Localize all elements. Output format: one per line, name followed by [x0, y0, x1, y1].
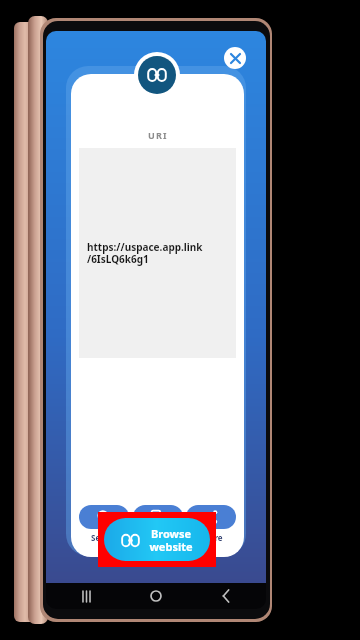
button[interactable]: Link — [138, 56, 176, 94]
button[interactable]: Search — [78, 505, 130, 543]
staticText: Search — [91, 532, 118, 543]
button[interactable]: Share — [185, 505, 237, 543]
staticText: Copy — [148, 532, 168, 543]
button[interactable]: Home — [146, 586, 166, 606]
staticText: Share — [200, 532, 223, 543]
staticText: Browse website — [149, 526, 193, 554]
button[interactable]: Browse website — [104, 518, 210, 561]
button[interactable]: Recents — [76, 586, 96, 606]
button[interactable]: Copy — [132, 505, 184, 543]
button[interactable]: Back — [216, 586, 236, 606]
staticText: URI — [148, 129, 168, 141]
staticText: https://uspace.app.link /6IsLQ6k6g1 — [87, 240, 203, 266]
button[interactable]: Close — [224, 47, 246, 69]
